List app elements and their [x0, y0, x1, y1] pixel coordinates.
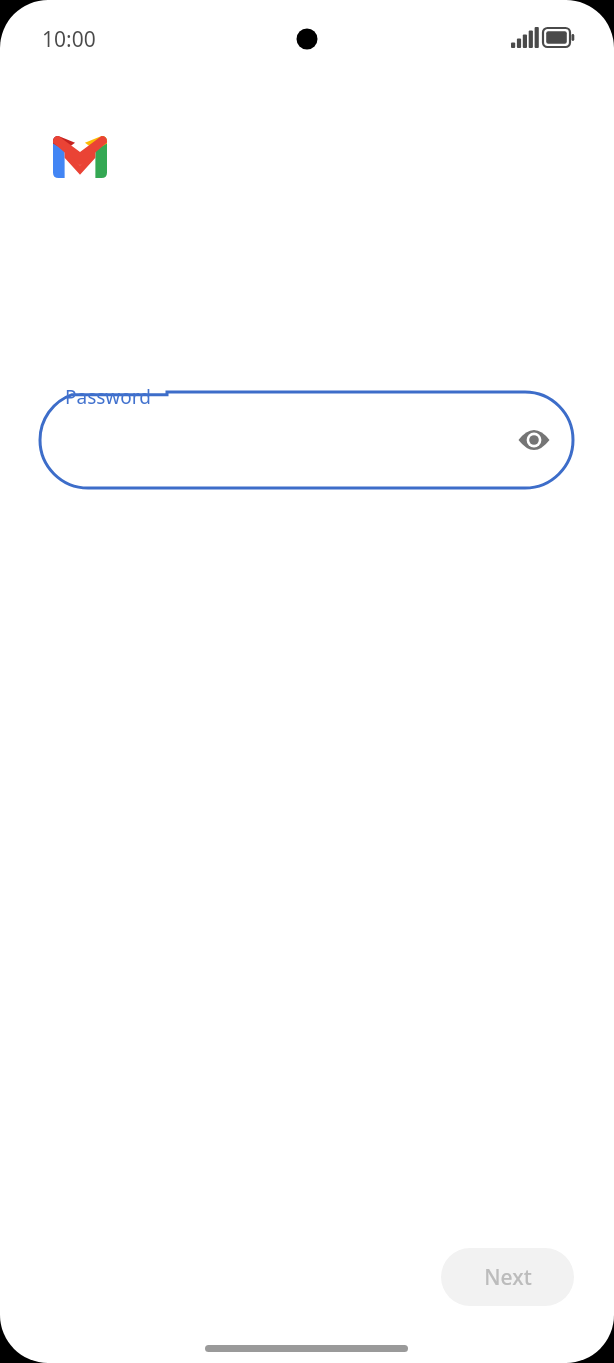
- button[interactable]: Show password: [510, 416, 558, 464]
- staticText: 10:00: [42, 25, 96, 54]
- staticText: Password: [65, 384, 151, 410]
- button[interactable]: Next: [441, 1248, 574, 1306]
- button[interactable]: [40, 392, 573, 488]
- staticText: Next: [484, 1263, 532, 1292]
